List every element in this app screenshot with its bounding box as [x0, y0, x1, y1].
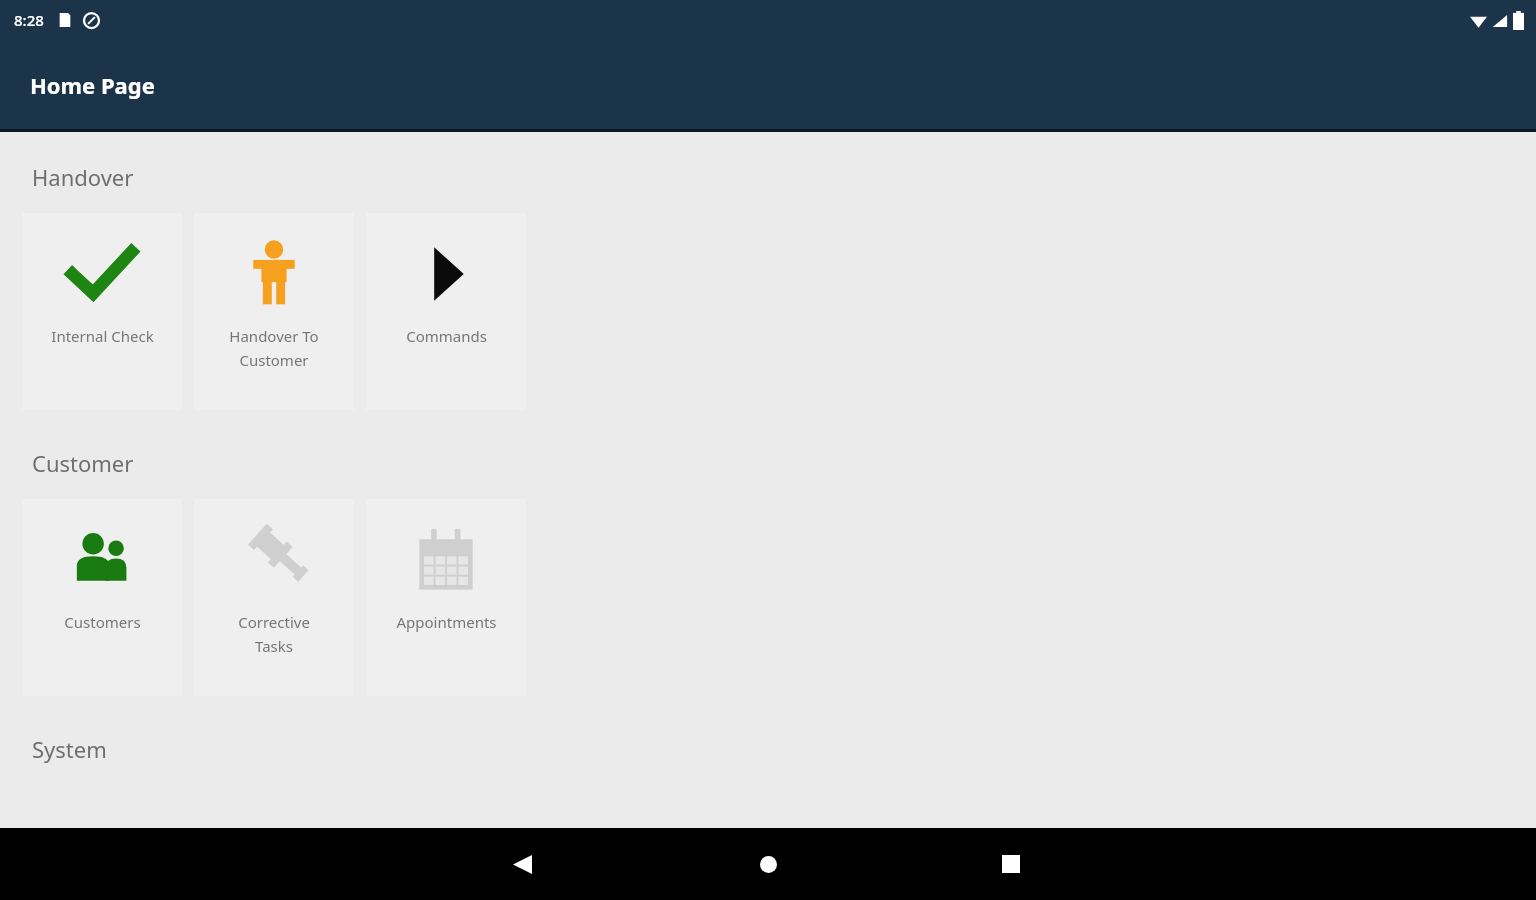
button[interactable]: Handover To Customer	[194, 213, 354, 410]
staticText: Customers	[64, 612, 141, 632]
button[interactable]: Appointments	[366, 499, 526, 696]
button[interactable]: Back	[498, 840, 546, 888]
button[interactable]: Customers	[22, 499, 182, 696]
staticText: Internal Check	[51, 326, 154, 346]
button[interactable]: Commands	[366, 213, 526, 410]
staticText: System	[32, 734, 107, 764]
staticText: Handover To Customer	[229, 326, 319, 370]
staticText: Customer	[32, 448, 134, 478]
button[interactable]: Corrective Tasks	[194, 499, 354, 696]
staticText: Handover	[32, 162, 134, 192]
staticText: Commands	[406, 326, 487, 346]
staticText: Corrective Tasks	[238, 612, 310, 656]
button[interactable]: Home	[744, 840, 792, 888]
staticText: Home Page	[30, 70, 155, 100]
button[interactable]: Recent apps	[987, 840, 1035, 888]
button[interactable]: Internal Check	[22, 213, 182, 410]
staticText: Appointments	[396, 612, 497, 632]
staticText: 8:28	[14, 10, 44, 30]
